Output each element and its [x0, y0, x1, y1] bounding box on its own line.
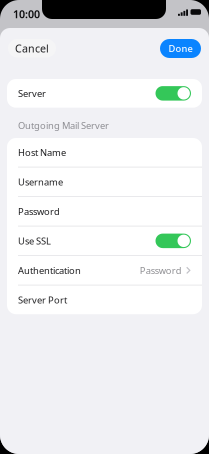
staticText: Server Port — [18, 294, 67, 306]
staticText: Done — [168, 42, 192, 55]
button[interactable]: Authentication — [7, 256, 202, 285]
staticText: Username — [18, 176, 63, 188]
staticText: Password — [18, 205, 60, 218]
staticText: Authentication — [18, 264, 81, 277]
staticText: Password — [140, 264, 182, 277]
button[interactable]: Server Port — [7, 285, 202, 314]
staticText: Cancel — [15, 41, 49, 55]
button[interactable]: Password — [7, 197, 202, 226]
staticText: Use SSL — [18, 235, 51, 247]
button[interactable]: Cancel — [8, 39, 56, 57]
staticText: Server — [18, 87, 46, 100]
button[interactable]: Host Name — [7, 138, 202, 167]
button[interactable]: Username — [7, 167, 202, 196]
staticText: Outgoing Mail Server — [18, 119, 109, 132]
staticText: Host Name — [18, 146, 66, 159]
button[interactable]: Server — [7, 79, 202, 108]
button[interactable]: Use SSL — [7, 226, 202, 255]
button[interactable]: Done — [160, 39, 201, 58]
staticText: 10:00 — [13, 7, 40, 21]
